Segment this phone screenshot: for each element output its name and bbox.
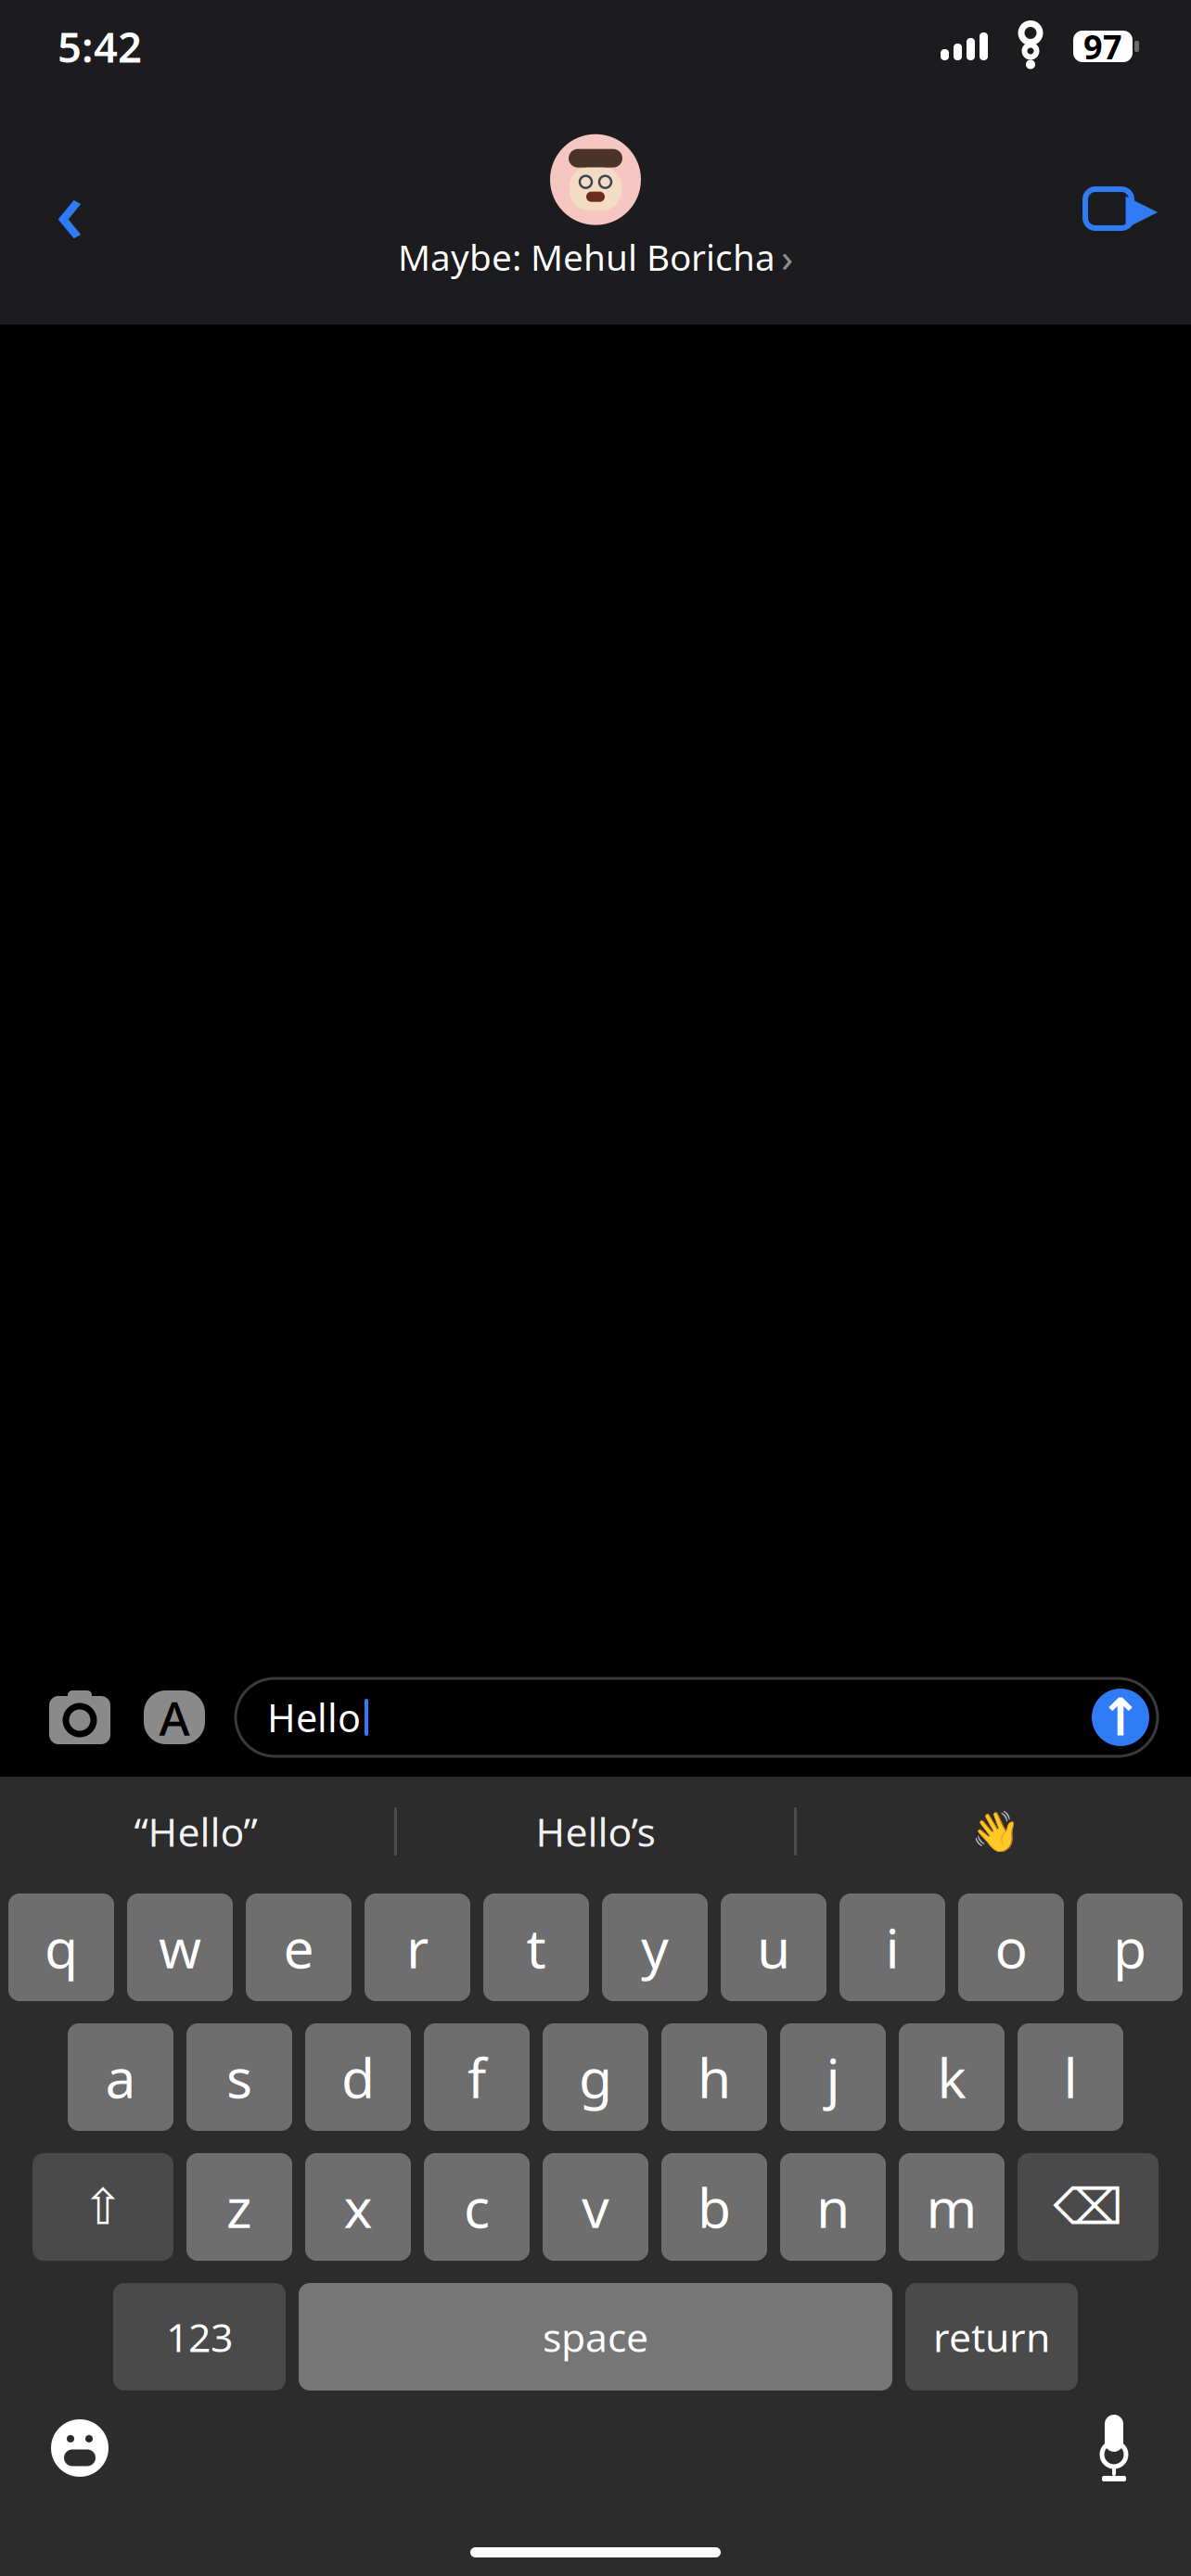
staticText: s: [226, 2041, 252, 2113]
staticText: z: [226, 2171, 252, 2243]
button[interactable]: Dictation: [1088, 2416, 1140, 2480]
staticText: c: [464, 2171, 490, 2243]
button[interactable]: d: [305, 2023, 411, 2131]
staticText: p: [1113, 1911, 1146, 1983]
staticText: u: [757, 1911, 790, 1983]
staticText: a: [105, 2041, 136, 2113]
button[interactable]: k: [899, 2023, 1005, 2131]
staticText: q: [45, 1911, 78, 1983]
button[interactable]: 👋: [797, 1777, 1191, 1886]
staticText: g: [579, 2041, 612, 2113]
staticText: 5:42: [58, 18, 142, 74]
staticText: ↑: [1099, 1688, 1142, 1747]
button[interactable]: p: [1077, 1894, 1183, 2001]
button[interactable]: u: [721, 1894, 826, 2001]
staticText: “Hello”: [134, 1805, 257, 1858]
button[interactable]: w: [127, 1894, 233, 2001]
staticText: A: [159, 1686, 190, 1749]
staticText: r: [406, 1911, 429, 1983]
staticText: b: [698, 2171, 731, 2243]
button[interactable]: y: [602, 1894, 708, 2001]
button[interactable]: space: [299, 2283, 892, 2391]
staticText: 123: [166, 2311, 233, 2363]
button[interactable]: b: [661, 2153, 767, 2261]
staticText: y: [641, 1911, 669, 1983]
button[interactable]: v: [543, 2153, 648, 2261]
button[interactable]: Hello’s: [397, 1777, 794, 1886]
button[interactable]: i: [839, 1894, 945, 2001]
button[interactable]: a: [68, 2023, 173, 2131]
button[interactable]: ⌫: [1018, 2153, 1159, 2261]
staticText: ›: [781, 231, 793, 283]
button[interactable]: l: [1018, 2023, 1123, 2131]
staticText: m: [926, 2171, 977, 2243]
button[interactable]: z: [186, 2153, 292, 2261]
button[interactable]: j: [780, 2023, 886, 2131]
button[interactable]: g: [543, 2023, 648, 2131]
staticText: ▶: [1126, 185, 1158, 233]
button[interactable]: FaceTime video call: [1083, 186, 1154, 231]
staticText: d: [341, 2041, 375, 2113]
staticText: return: [933, 2311, 1050, 2363]
button[interactable]: return: [905, 2283, 1078, 2391]
button[interactable]: Emoji keyboard: [51, 2419, 109, 2477]
staticText: l: [1063, 2041, 1077, 2113]
staticText: e: [283, 1911, 314, 1983]
staticText: v: [582, 2171, 609, 2243]
button[interactable]: Back: [37, 176, 102, 241]
staticText: Hello: [267, 1692, 361, 1743]
button[interactable]: q: [8, 1894, 114, 2001]
staticText: k: [937, 2041, 966, 2113]
staticText: t: [526, 1911, 546, 1983]
staticText: space: [543, 2311, 648, 2363]
button[interactable]: “Hello”: [0, 1777, 394, 1886]
staticText: Hello’s: [536, 1805, 655, 1858]
button[interactable]: Apps: [137, 1687, 211, 1748]
button[interactable]: r: [365, 1894, 470, 2001]
staticText: w: [159, 1911, 201, 1983]
staticText: ⇧: [82, 2179, 124, 2235]
staticText: x: [344, 2171, 372, 2243]
button[interactable]: m: [899, 2153, 1005, 2261]
button[interactable]: e: [246, 1894, 352, 2001]
staticText: h: [698, 2041, 731, 2113]
staticText: Maybe: Mehul Boricha: [398, 233, 775, 281]
button[interactable]: t: [483, 1894, 589, 2001]
button[interactable]: 123: [113, 2283, 286, 2391]
button[interactable]: Hello: [236, 1678, 1158, 1756]
staticText: f: [467, 2041, 486, 2113]
button[interactable]: c: [424, 2153, 530, 2261]
button[interactable]: n: [780, 2153, 886, 2261]
staticText: n: [816, 2171, 850, 2243]
staticText: o: [995, 1911, 1027, 1983]
staticText: 👋: [971, 1809, 1020, 1854]
button[interactable]: Camera: [46, 1687, 113, 1748]
button[interactable]: f: [424, 2023, 530, 2131]
staticText: j: [826, 2041, 840, 2113]
button[interactable]: s: [186, 2023, 292, 2131]
staticText: 97: [1083, 24, 1122, 69]
staticText: ⌫: [1053, 2179, 1123, 2235]
button[interactable]: Maybe: Mehul Boricha: [398, 134, 793, 283]
staticText: i: [885, 1911, 899, 1983]
button[interactable]: o: [958, 1894, 1064, 2001]
button[interactable]: ⇧: [32, 2153, 173, 2261]
staticText: ‹: [55, 150, 84, 268]
button[interactable]: h: [661, 2023, 767, 2131]
button[interactable]: x: [305, 2153, 411, 2261]
